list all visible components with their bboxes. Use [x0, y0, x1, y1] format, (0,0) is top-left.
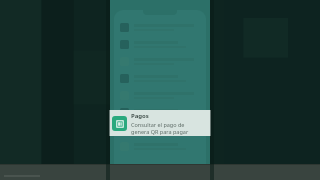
staticText: Pagos — [131, 112, 149, 120]
button[interactable] — [120, 107, 200, 118]
button[interactable]: Pagos app icon — [109, 110, 211, 136]
button[interactable] — [120, 39, 200, 50]
button[interactable] — [120, 22, 200, 33]
button[interactable] — [120, 124, 200, 135]
staticText: Consultar el pago de mensualidades y — [131, 121, 208, 128]
staticText: genera QR para pagar — [131, 128, 189, 135]
other: Pagos app icon — [112, 116, 127, 131]
button[interactable] — [120, 73, 200, 84]
